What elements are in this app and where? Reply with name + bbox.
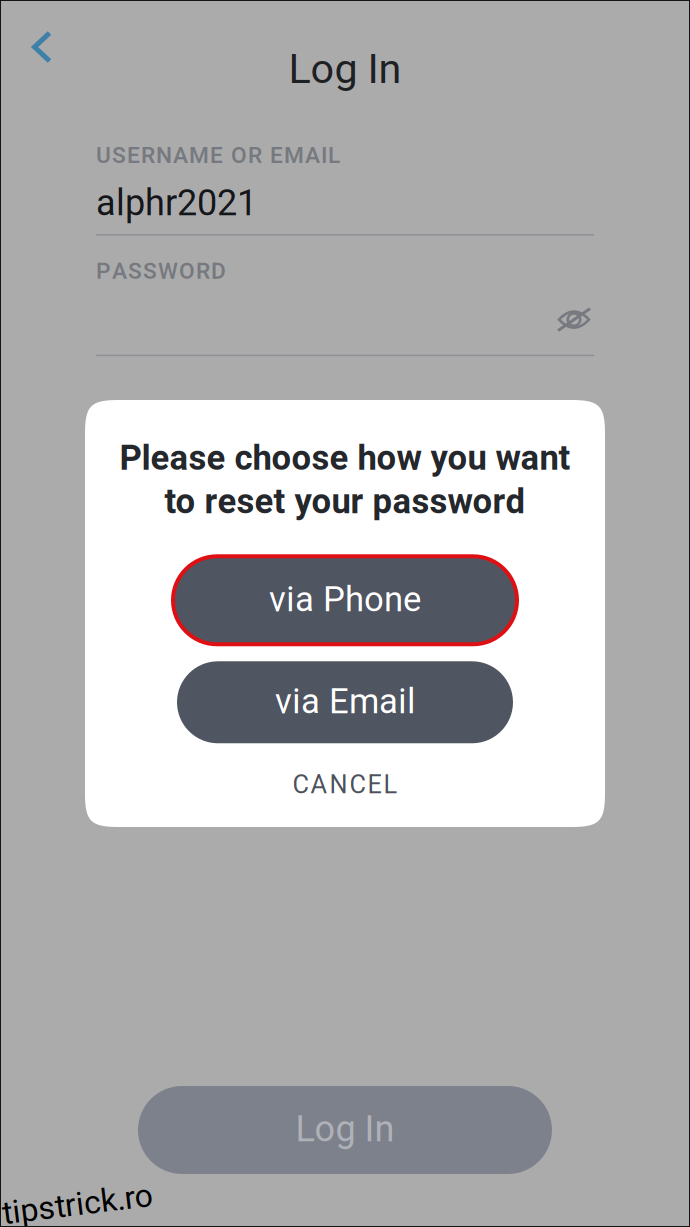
button[interactable]: via Phone [171, 554, 519, 646]
staticText: Log In [295, 1104, 394, 1156]
button[interactable]: Show password [548, 296, 600, 344]
staticText: alphr2021 [96, 178, 257, 230]
staticText: U S E R N A M E O R E M A I L [96, 140, 340, 172]
staticText: Please choose how you want [119, 434, 570, 484]
button[interactable]: Back [10, 17, 74, 77]
staticText: tipstrick.ro [2, 1182, 153, 1227]
staticText: via Phone [269, 575, 421, 625]
button[interactable]: C A N C E L [195, 763, 495, 807]
staticText: Log In [288, 40, 401, 100]
staticText: via Email [275, 677, 415, 727]
button[interactable]: Log In [138, 1086, 552, 1174]
staticText: to reset your password [164, 478, 525, 527]
staticText: C A N C E L [292, 767, 397, 803]
button[interactable]: via Email [177, 661, 513, 743]
staticText: P A S S W O R D [96, 255, 226, 288]
